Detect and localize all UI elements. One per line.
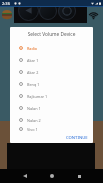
button[interactable]: Nalan 2	[10, 114, 93, 126]
button[interactable]: CONTINUE	[64, 133, 90, 143]
staticText: Nalan 1	[27, 106, 41, 111]
staticText: Vivo 1	[27, 127, 38, 132]
button[interactable]: Rajkumar 1	[10, 90, 93, 102]
staticText: CONTINUE	[66, 135, 88, 141]
staticText: Akar 1	[27, 58, 39, 63]
button[interactable]: Akar 1	[10, 54, 93, 66]
button[interactable]: Akar 2	[10, 66, 93, 78]
button[interactable]: Vivo 1	[10, 126, 93, 132]
staticText: Select Volume Device	[10, 31, 93, 38]
button[interactable]: Benq 1	[10, 78, 93, 90]
staticText: Akar 2	[27, 70, 39, 75]
button[interactable]: Nalan 1	[10, 102, 93, 114]
staticText: Radio	[27, 46, 38, 51]
button[interactable]: Radio	[10, 42, 93, 54]
button[interactable]: Back	[18, 169, 32, 183]
button[interactable]: Recents	[72, 169, 86, 183]
staticText: Rajkumar 1	[27, 94, 48, 99]
staticText: Benq 1	[27, 82, 40, 87]
button[interactable]: Cast	[87, 8, 100, 21]
staticText: Nalan 2	[27, 118, 41, 123]
button[interactable]: Home	[45, 169, 59, 183]
staticText: 2:36	[2, 1, 10, 6]
